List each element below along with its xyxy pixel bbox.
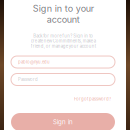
button[interactable]: Sign in bbox=[11, 113, 115, 130]
staticText: Forgot password? bbox=[74, 96, 111, 102]
staticText: Back for more fun? Sign in to create new… bbox=[30, 33, 95, 49]
staticText: Sign in to your account bbox=[32, 3, 93, 25]
staticText: Password bbox=[18, 77, 38, 82]
button[interactable]: pablo@nyu.edu bbox=[11, 56, 115, 68]
button[interactable]: Forgot password? bbox=[11, 95, 115, 102]
button[interactable]: Password bbox=[11, 73, 115, 85]
staticText: pablo@nyu.edu bbox=[18, 59, 50, 65]
staticText: Sign in bbox=[53, 118, 73, 126]
